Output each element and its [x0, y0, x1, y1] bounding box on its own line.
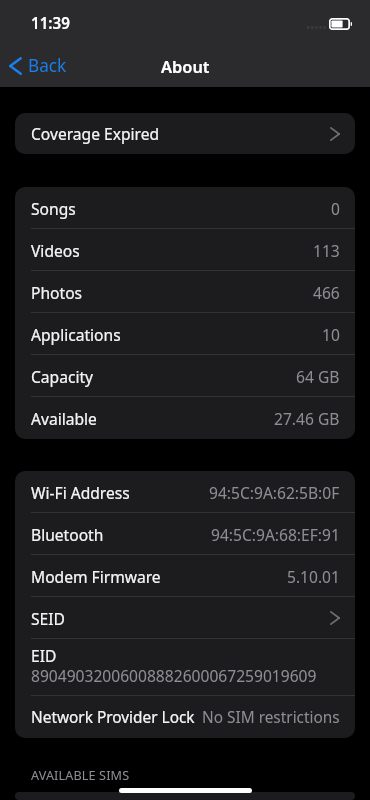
- staticText: Capacity: [31, 366, 94, 387]
- staticText: Wi-Fi Address: [31, 482, 130, 503]
- button[interactable]: Bluetooth: [15, 513, 355, 555]
- staticText: EID: [31, 645, 57, 666]
- staticText: 64 GB: [296, 366, 340, 387]
- staticText: Videos: [31, 240, 80, 261]
- staticText: 11:39: [31, 13, 70, 34]
- button[interactable]: Capacity: [15, 355, 355, 397]
- button[interactable]: Modem Firmware: [15, 555, 355, 597]
- staticText: AVAILABLE SIMS: [31, 767, 130, 784]
- staticText: Applications: [31, 324, 121, 345]
- staticText: 0: [331, 198, 340, 219]
- staticText: 94:5C:9A:68:EF:91: [211, 524, 340, 545]
- staticText: 113: [313, 240, 340, 261]
- staticText: 27.46 GB: [274, 408, 340, 429]
- staticText: Available: [31, 408, 97, 429]
- staticText: Bluetooth: [31, 524, 104, 545]
- button[interactable]: Songs: [15, 187, 355, 229]
- button[interactable]: Applications: [15, 313, 355, 355]
- button[interactable]: EID: [15, 639, 355, 696]
- button[interactable]: Wi-Fi Address: [15, 471, 355, 513]
- button[interactable]: Videos: [15, 229, 355, 271]
- staticText: Songs: [31, 198, 76, 219]
- button[interactable]: Network Provider Lock: [15, 696, 355, 738]
- staticText: Modem Firmware: [31, 566, 161, 587]
- staticText: Coverage Expired: [31, 123, 160, 144]
- staticText: SEID: [31, 608, 65, 629]
- staticText: 5.10.01: [287, 566, 340, 587]
- button[interactable]: [15, 792, 355, 800]
- staticText: 10: [322, 324, 340, 345]
- staticText: No SIM restrictions: [202, 707, 340, 728]
- staticText: 466: [313, 282, 340, 303]
- button[interactable]: Coverage Expired: [15, 113, 355, 154]
- staticText: 89049032006008882600067259019609: [31, 665, 317, 686]
- button[interactable]: Available: [15, 397, 355, 439]
- button[interactable]: Photos: [15, 271, 355, 313]
- button[interactable]: Back: [0, 44, 77, 87]
- staticText: Network Provider Lock: [31, 707, 195, 728]
- staticText: Back: [28, 54, 67, 77]
- staticText: Photos: [31, 282, 83, 303]
- button[interactable]: SEID: [15, 597, 355, 639]
- staticText: 94:5C:9A:62:5B:0F: [209, 482, 340, 503]
- staticText: About: [161, 55, 210, 77]
- other: Battery: [329, 18, 352, 30]
